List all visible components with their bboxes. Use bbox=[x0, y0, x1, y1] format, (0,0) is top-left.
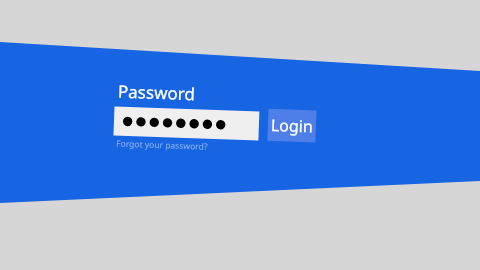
button[interactable]: Password input field bbox=[114, 110, 259, 139]
button[interactable]: Login bbox=[268, 107, 316, 139]
button[interactable]: Forgot your password? bbox=[117, 140, 212, 153]
